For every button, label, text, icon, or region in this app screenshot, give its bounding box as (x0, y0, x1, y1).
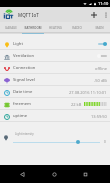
button[interactable]: Home (46, 165, 62, 183)
staticText: HEATING (49, 26, 62, 30)
staticText: MAIN (95, 26, 104, 30)
button[interactable]: Light intensity (0, 122, 110, 146)
staticText: 22 kB (71, 102, 82, 107)
button[interactable]: uptime (0, 110, 110, 122)
button[interactable]: Connection (0, 62, 110, 74)
button[interactable]: BATHROOM (22, 22, 44, 34)
staticText: 13:59:50 (91, 114, 107, 119)
button[interactable]: Light (0, 38, 110, 50)
staticText: -50 dBi (94, 78, 107, 83)
staticText: freemem (13, 101, 32, 107)
staticText: Light (13, 41, 23, 47)
button[interactable]: Recents (77, 165, 93, 183)
staticText: offline (95, 66, 107, 71)
button[interactable]: Signal level (0, 74, 110, 86)
staticText: 0 (104, 140, 106, 144)
staticText: Light intensity (15, 132, 34, 136)
staticText: Connection (13, 65, 36, 71)
button[interactable]: freemem (0, 98, 110, 110)
button[interactable]: Ventilation (0, 50, 110, 62)
button[interactable]: Add (87, 7, 101, 22)
staticText: GARAGE (5, 26, 17, 30)
button[interactable]: RADIO (66, 22, 88, 34)
staticText: 27.08.2016 11:10:01 (69, 90, 107, 95)
button[interactable]: MAIN (88, 22, 110, 34)
button[interactable]: GARAGE (0, 22, 22, 34)
button[interactable]: Back (14, 165, 30, 183)
staticText: uptime (13, 113, 28, 119)
staticText: RADIO (72, 26, 82, 30)
staticText: 11:10 (98, 1, 109, 6)
button[interactable]: HEATING (44, 22, 66, 34)
staticText: BATHROOM (24, 26, 42, 30)
staticText: MQTT IoT (18, 12, 39, 18)
button[interactable]: More options (101, 7, 110, 22)
staticText: Ventilation (13, 53, 35, 59)
button[interactable]: Date time (0, 86, 110, 98)
staticText: Signal level (13, 77, 35, 83)
staticText: Date time (13, 89, 33, 95)
